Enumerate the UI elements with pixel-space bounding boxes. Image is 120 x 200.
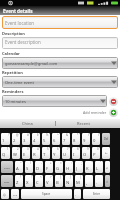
staticText: Reminders — [2, 89, 24, 94]
button[interactable]: ?1# — [11, 189, 19, 199]
button[interactable]: Del — [102, 133, 110, 145]
staticText: ?1# — [13, 193, 17, 196]
staticText: O — [83, 152, 87, 158]
staticText: B — [56, 180, 59, 186]
staticText: - — [41, 161, 42, 165]
button[interactable]: E — [22, 147, 30, 159]
button[interactable]: ← — [102, 147, 110, 159]
staticText: * — [77, 133, 79, 137]
staticText: N — [66, 180, 70, 186]
staticText: I — [73, 152, 75, 158]
button[interactable]: Space — [21, 189, 72, 199]
button[interactable]: 3 — [22, 133, 30, 145]
button[interactable]: R — [32, 147, 40, 159]
button[interactable]: A — [15, 161, 23, 173]
staticText: L — [96, 166, 99, 172]
button[interactable]: L — [95, 161, 103, 173]
staticText: T — [43, 152, 46, 158]
staticText: Shift — [4, 180, 10, 183]
button[interactable]: 8 — [72, 133, 80, 145]
button[interactable]: CAPS — [1, 161, 13, 173]
button[interactable]: D — [35, 161, 43, 173]
button[interactable]: 9 — [82, 133, 90, 145]
staticText: Description — [2, 31, 25, 36]
staticText: 8 — [77, 147, 79, 151]
button[interactable]: M — [75, 175, 83, 187]
button[interactable]: Remove reminder — [109, 97, 118, 106]
button[interactable]: 10 minutes — [2, 95, 107, 107]
button[interactable]: Enter — [83, 189, 110, 199]
button[interactable]: Shift — [1, 175, 13, 187]
staticText: CAPS — [4, 166, 10, 169]
button[interactable]: W — [12, 147, 20, 159]
staticText: Event details — [3, 8, 33, 14]
button[interactable]: . — [74, 189, 81, 199]
button[interactable]: V — [45, 175, 53, 187]
button[interactable]: 4 — [32, 133, 40, 145]
staticText: 6 — [57, 147, 59, 151]
button[interactable]: N — [65, 175, 73, 187]
button[interactable]: S — [25, 161, 33, 173]
button[interactable]: C — [35, 175, 43, 187]
staticText: Calendar — [2, 51, 20, 56]
staticText: A — [16, 166, 19, 172]
button[interactable]: , — [85, 175, 93, 187]
staticText: & — [66, 133, 69, 137]
staticText: 3 — [23, 138, 26, 144]
staticText: 9 — [87, 147, 89, 151]
button[interactable]: Q — [1, 147, 10, 159]
staticText: ← — [105, 151, 108, 155]
staticText: Event description — [5, 39, 41, 45]
button[interactable]: ⇧ — [105, 175, 110, 187]
button[interactable]: One-time event — [2, 76, 118, 88]
staticText: 5 — [47, 147, 49, 151]
staticText: Recent — [77, 121, 90, 126]
button[interactable]: T — [42, 147, 50, 159]
staticText: 4 — [33, 138, 36, 144]
button[interactable]: 0 — [92, 133, 100, 145]
staticText: > — [50, 175, 52, 179]
button[interactable]: Z — [15, 175, 23, 187]
staticText: E — [23, 152, 26, 158]
button[interactable]: 6 — [52, 133, 60, 145]
staticText: gonzarexample@gmail.com — [5, 61, 58, 66]
button[interactable]: ↵ — [105, 161, 110, 173]
button[interactable]: . — [95, 175, 103, 187]
button[interactable]: Event location — [2, 16, 118, 29]
button[interactable]: H — [65, 161, 73, 173]
button[interactable]: China — [0, 119, 55, 128]
button[interactable]: G — [55, 161, 63, 173]
staticText: ' — [91, 161, 92, 165]
button[interactable]: 5 — [42, 133, 50, 145]
button[interactable]: 1 — [1, 133, 10, 145]
button[interactable]: gonzarexample@gmail.com — [2, 57, 118, 69]
button[interactable]: O — [82, 147, 90, 159]
button[interactable]: Add reminder — [109, 108, 118, 117]
button[interactable]: Event description — [2, 37, 118, 49]
button[interactable]: 7 — [62, 133, 70, 145]
staticText: 0 — [97, 147, 99, 151]
button[interactable]: 2 — [12, 133, 20, 145]
button[interactable]: F — [45, 161, 53, 173]
button[interactable]: Y — [52, 147, 60, 159]
staticText: / — [30, 161, 32, 165]
button[interactable]: ☺ — [1, 189, 9, 199]
button[interactable]: U — [62, 147, 70, 159]
staticText: @ — [16, 133, 19, 137]
staticText: 0 — [93, 138, 96, 144]
staticText: Enter — [93, 192, 101, 196]
button[interactable]: I — [72, 147, 80, 159]
staticText: Event location — [5, 20, 35, 26]
button[interactable]: J — [75, 161, 83, 173]
button[interactable]: P — [92, 147, 100, 159]
button[interactable]: Recent — [56, 119, 111, 128]
button[interactable]: K — [85, 161, 93, 173]
button[interactable]: B — [55, 175, 63, 187]
staticText: " — [100, 161, 102, 165]
staticText: < — [40, 175, 42, 179]
staticText: Y — [53, 152, 56, 158]
staticText: ! — [31, 175, 32, 179]
button[interactable]: X — [25, 175, 33, 187]
staticText: ⇧ — [106, 180, 109, 183]
staticText: 10 minutes — [5, 99, 26, 104]
